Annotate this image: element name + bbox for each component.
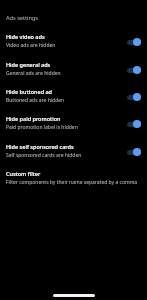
staticText: Filter components by their name separate… xyxy=(6,179,138,186)
staticText: Self sponsored cards are hidden xyxy=(6,152,82,159)
button[interactable]: Hide buttoned ad xyxy=(0,82,147,109)
button[interactable]: Hide general ads xyxy=(0,55,147,82)
button[interactable]: Hide self sponsored cards xyxy=(127,146,141,158)
button[interactable]: Hide general ads xyxy=(127,64,141,76)
staticText: Hide paid promotion xyxy=(6,115,61,122)
button[interactable]: Hide buttoned ad xyxy=(127,91,141,103)
button[interactable]: Hide paid promotion xyxy=(0,109,147,136)
staticText: Ads settings xyxy=(6,14,39,22)
staticText: Hide general ads xyxy=(6,61,51,68)
button[interactable]: Hide video ads xyxy=(0,27,147,54)
staticText: General ads are hidden xyxy=(6,70,61,77)
button[interactable]: Hide self sponsored cards xyxy=(0,137,147,164)
staticText: Paid promotion label is hidden xyxy=(6,124,78,131)
staticText: Hide buttoned ad xyxy=(6,88,53,95)
staticText: Hide video ads xyxy=(6,33,45,40)
staticText: Custom filter xyxy=(6,170,41,177)
button[interactable]: Hide paid promotion xyxy=(127,118,141,130)
staticText: Video ads are hidden xyxy=(6,42,56,49)
button[interactable]: Custom filter xyxy=(0,164,147,191)
staticText: Buttoned ads are hidden xyxy=(6,97,65,104)
button[interactable]: Hide video ads xyxy=(127,36,141,48)
staticText: Hide self sponsored cards xyxy=(6,143,74,150)
